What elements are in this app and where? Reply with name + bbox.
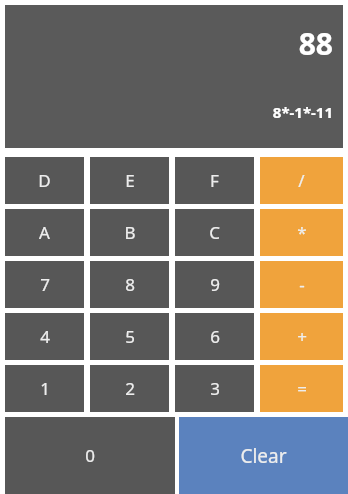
button[interactable]: 8 xyxy=(90,261,169,308)
button[interactable]: 0 xyxy=(5,417,175,494)
staticText: 5 xyxy=(125,325,135,348)
button[interactable]: 7 xyxy=(5,261,84,308)
button[interactable]: 6 xyxy=(175,313,254,360)
staticText: F xyxy=(210,169,219,192)
button[interactable]: - xyxy=(260,261,343,308)
staticText: C xyxy=(209,221,220,244)
button[interactable]: B xyxy=(90,209,169,256)
button[interactable]: 4 xyxy=(5,313,84,360)
button[interactable]: * xyxy=(260,209,343,256)
staticText: 88 xyxy=(298,23,333,64)
button[interactable]: A xyxy=(5,209,84,256)
staticText: - xyxy=(299,273,305,296)
staticText: 0 xyxy=(85,444,95,467)
button[interactable]: 2 xyxy=(90,365,169,412)
staticText: * xyxy=(297,221,307,244)
staticText: 9 xyxy=(210,273,220,296)
staticText: D xyxy=(38,169,51,192)
staticText: 4 xyxy=(40,325,50,348)
staticText: / xyxy=(298,169,305,192)
staticText: E xyxy=(125,169,135,192)
button[interactable]: 1 xyxy=(5,365,84,412)
staticText: 7 xyxy=(40,273,50,296)
staticText: 3 xyxy=(210,377,220,400)
button[interactable]: 5 xyxy=(90,313,169,360)
staticText: + xyxy=(297,325,307,348)
button[interactable]: / xyxy=(260,157,343,204)
staticText: 6 xyxy=(210,325,220,348)
staticText: 1 xyxy=(40,377,50,400)
button[interactable]: = xyxy=(260,365,343,412)
staticText: 8*-1*-11 xyxy=(272,102,333,122)
button[interactable]: 88 xyxy=(5,5,343,148)
button[interactable]: 3 xyxy=(175,365,254,412)
button[interactable]: Clear xyxy=(179,417,348,494)
staticText: 8 xyxy=(125,273,135,296)
staticText: Clear xyxy=(240,443,287,469)
button[interactable]: E xyxy=(90,157,169,204)
button[interactable]: + xyxy=(260,313,343,360)
button[interactable]: F xyxy=(175,157,254,204)
staticText: B xyxy=(124,221,136,244)
staticText: = xyxy=(297,377,307,400)
staticText: 2 xyxy=(125,377,135,400)
button[interactable]: C xyxy=(175,209,254,256)
button[interactable]: 9 xyxy=(175,261,254,308)
staticText: A xyxy=(39,221,50,244)
button[interactable]: D xyxy=(5,157,84,204)
